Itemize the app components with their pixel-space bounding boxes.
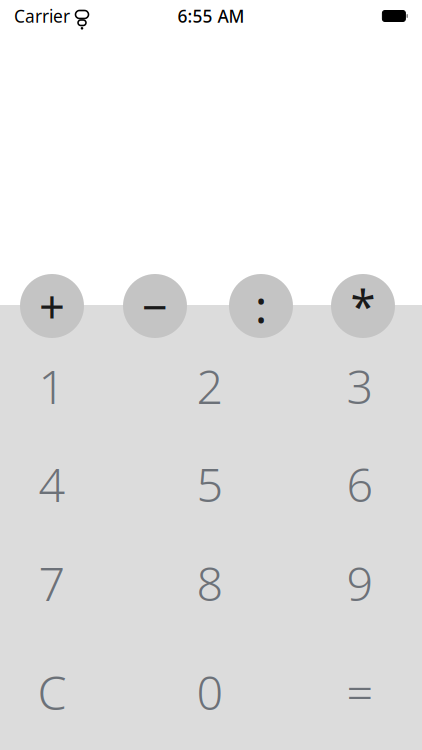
staticText: 4 [38,453,65,515]
staticText: 8 [196,552,223,614]
staticText: Carrier [14,4,70,27]
button[interactable]: 7 [4,544,100,622]
staticText: 6:55 AM [177,4,244,27]
staticText: 1 [38,355,65,417]
staticText: − [142,276,168,336]
button[interactable]: Plus [20,274,84,338]
button[interactable]: 5 [162,445,258,523]
button[interactable]: Minus [123,274,187,338]
staticText: : [255,276,267,336]
staticText: + [39,276,65,336]
staticText: = [346,661,373,723]
staticText: 9 [346,552,373,614]
button[interactable]: 9 [312,544,408,622]
button[interactable]: 4 [4,445,100,523]
button[interactable]: 3 [312,347,408,425]
staticText: * [350,276,375,336]
button[interactable]: 2 [162,347,258,425]
button[interactable]: = [312,653,408,731]
button[interactable]: 0 [162,653,258,731]
staticText: 2 [196,355,223,417]
staticText: C [37,661,66,723]
button[interactable]: Multiply [331,274,395,338]
staticText: 5 [196,453,223,515]
staticText: 0 [196,661,223,723]
staticText: 6 [346,453,373,515]
staticText: 3 [346,355,373,417]
button[interactable]: 6 [312,445,408,523]
staticText: 7 [38,552,65,614]
button[interactable]: 8 [162,544,258,622]
button[interactable]: 1 [4,347,100,425]
button[interactable]: Divide [229,274,293,338]
button[interactable]: C [4,653,100,731]
